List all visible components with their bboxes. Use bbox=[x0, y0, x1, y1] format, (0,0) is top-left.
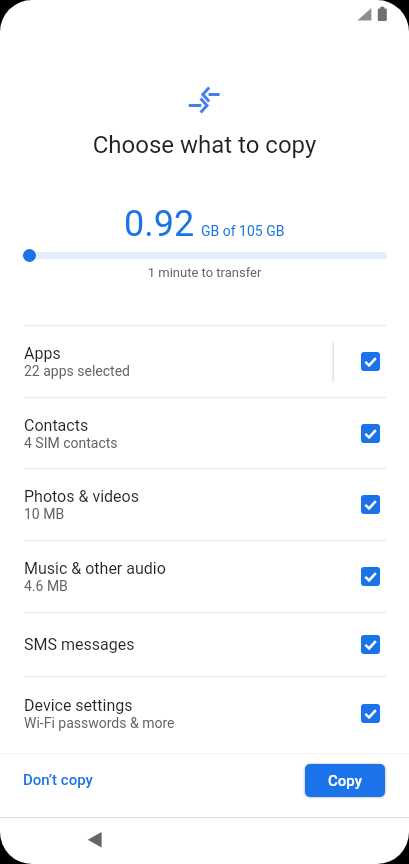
staticText: Copy bbox=[328, 772, 362, 790]
staticText: Apps bbox=[24, 344, 61, 363]
staticText: Music & other audio bbox=[24, 559, 166, 578]
button[interactable]: Music & other audio bbox=[0, 541, 409, 612]
staticText: 4 SIM contacts bbox=[24, 435, 118, 451]
button[interactable] bbox=[361, 352, 380, 371]
staticText: Choose what to copy bbox=[0, 131, 409, 159]
staticText: Photos & videos bbox=[24, 487, 139, 506]
button[interactable] bbox=[76, 818, 116, 864]
staticText: SMS messages bbox=[24, 635, 135, 654]
button[interactable]: Device settings bbox=[0, 677, 409, 749]
staticText: GB of 105 GB bbox=[201, 223, 285, 239]
staticText: 4.6 MB bbox=[24, 578, 68, 594]
staticText: Device settings bbox=[24, 696, 133, 715]
button[interactable] bbox=[361, 567, 380, 586]
staticText: 10 MB bbox=[24, 506, 65, 522]
button[interactable]: Copy bbox=[305, 764, 385, 797]
staticText: Wi-Fi passwords & more bbox=[24, 715, 175, 731]
staticText: 0.92 bbox=[124, 203, 195, 245]
button[interactable]: Photos & videos bbox=[0, 469, 409, 540]
staticText: 22 apps selected bbox=[24, 363, 130, 379]
staticText: Contacts bbox=[24, 416, 89, 435]
staticText: Don’t copy bbox=[23, 771, 93, 789]
button[interactable] bbox=[361, 495, 380, 514]
button[interactable] bbox=[361, 635, 380, 654]
button[interactable]: SMS messages bbox=[0, 613, 409, 676]
staticText: 1 minute to transfer bbox=[0, 265, 409, 280]
button[interactable]: Don’t copy bbox=[12, 760, 104, 800]
button[interactable] bbox=[361, 704, 380, 723]
button[interactable]: Apps bbox=[0, 326, 409, 397]
button[interactable]: Contacts bbox=[0, 398, 409, 468]
button[interactable] bbox=[361, 424, 380, 443]
